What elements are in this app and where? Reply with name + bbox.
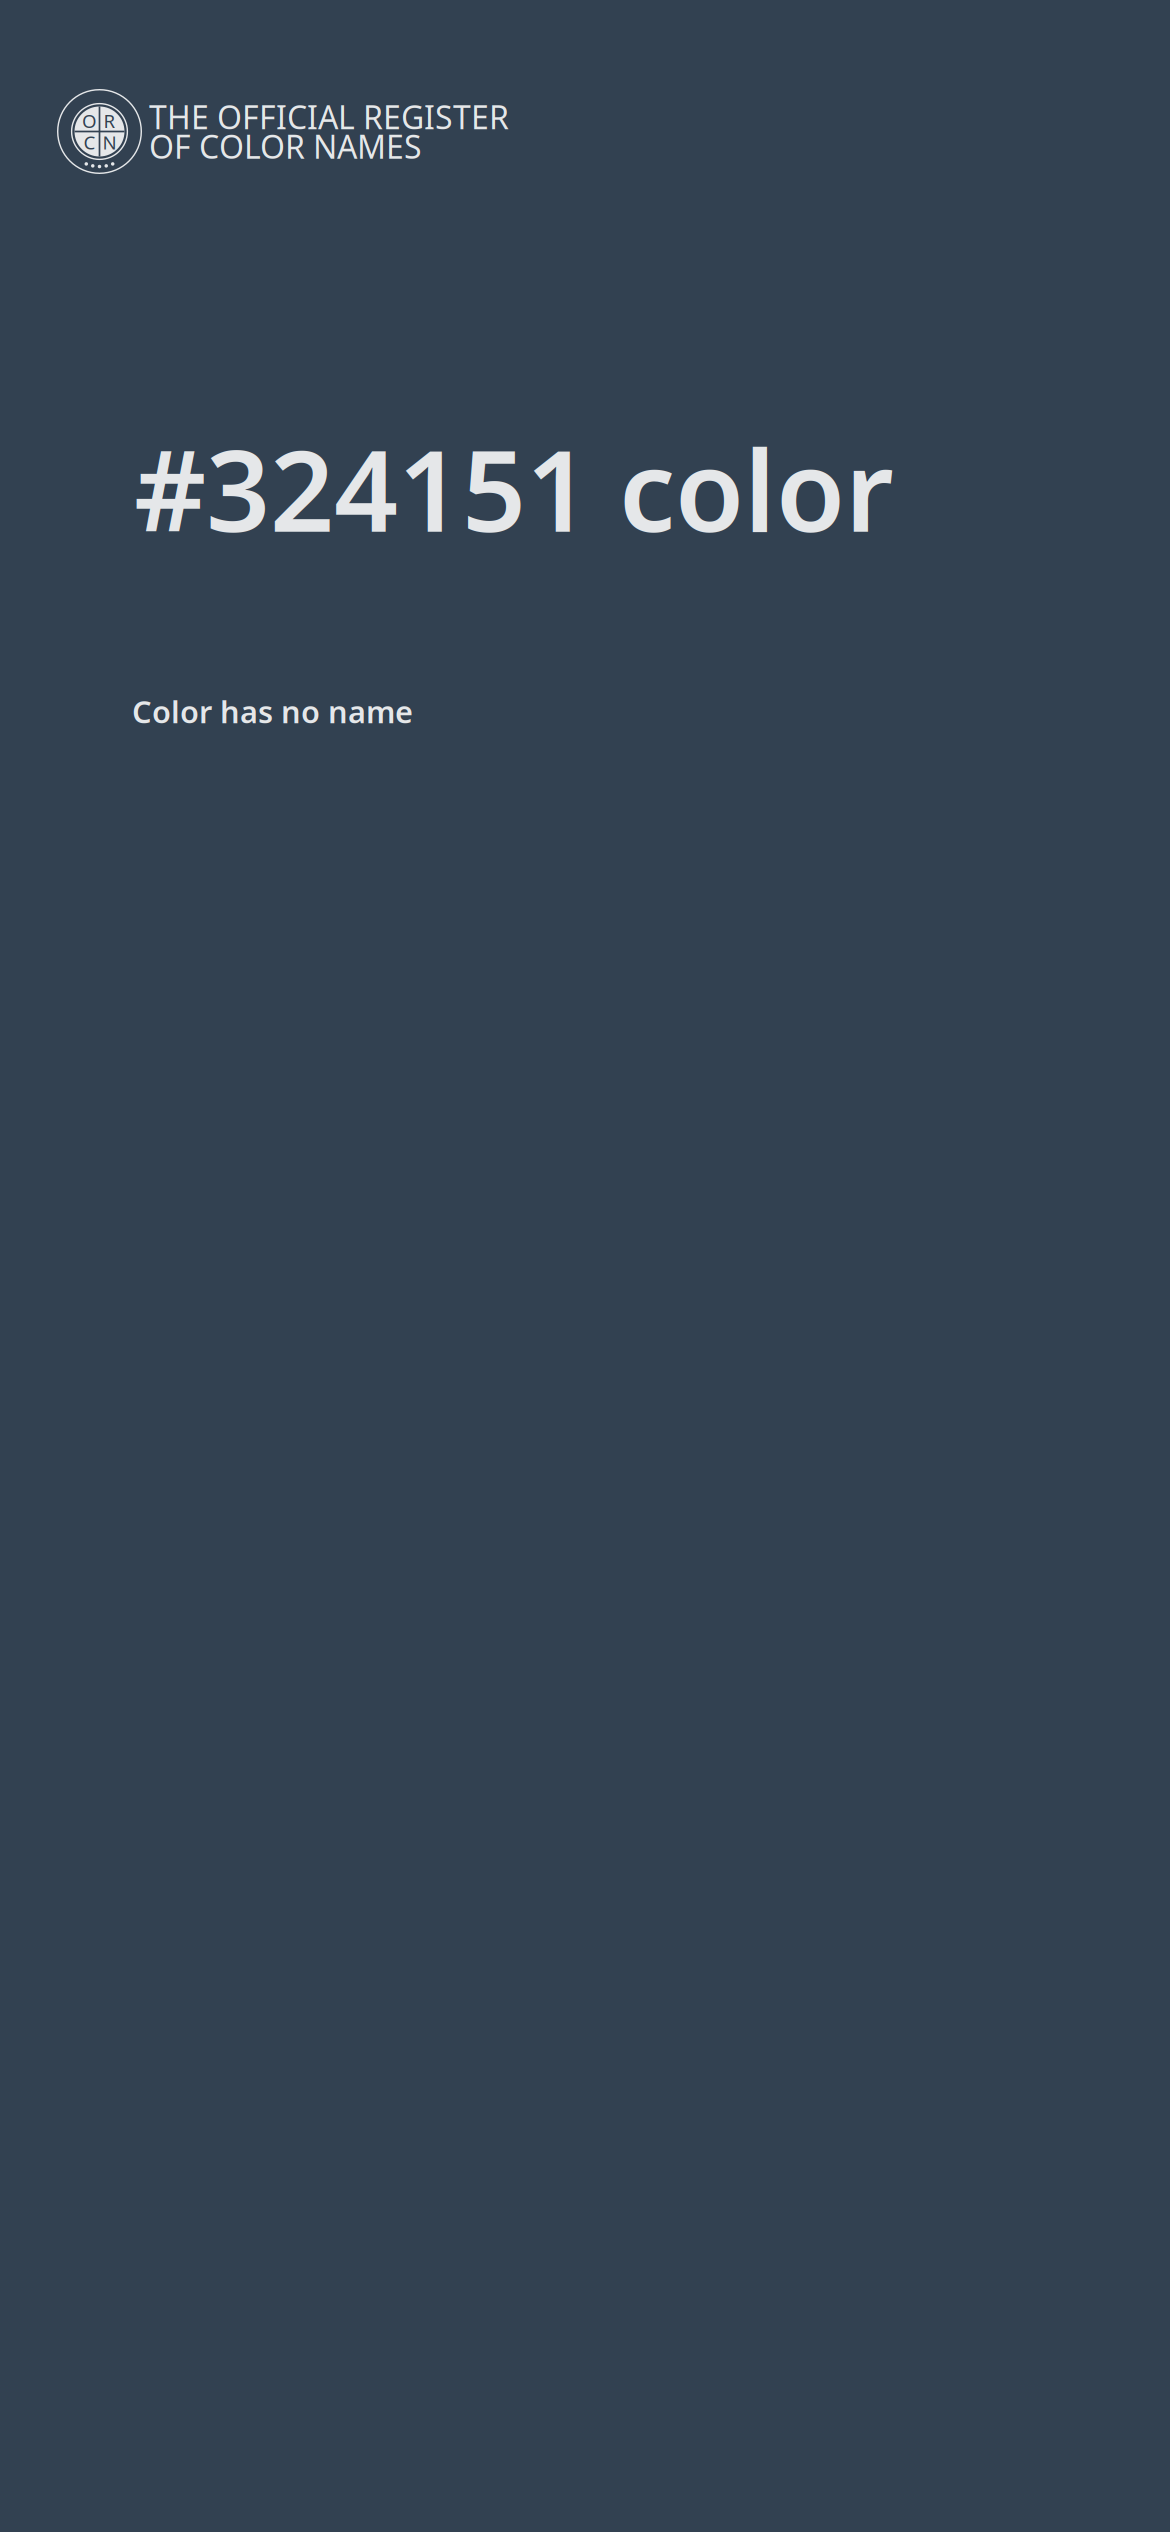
staticText: N [102,130,116,155]
staticText: OF COLOR NAMES [149,125,422,167]
staticText: O [82,108,97,133]
staticText: R [103,108,115,133]
staticText: Color has no name [132,691,413,732]
staticText: THE OFFICIAL REGISTER [149,95,509,138]
staticText: #324151 color [134,414,894,563]
button[interactable]: The Official Register of Color Names — h… [57,89,509,174]
staticText: C [84,130,96,155]
